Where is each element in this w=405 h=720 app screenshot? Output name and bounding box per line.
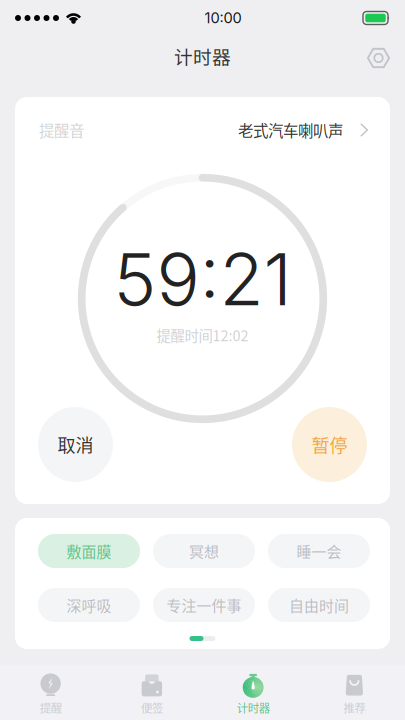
button[interactable]: 冥想 [153,534,255,568]
staticText: 专注一件事 [166,594,241,616]
staticText: 老式汽车喇叭声 [238,119,343,141]
staticText: 便签 [141,699,163,716]
button[interactable]: 提醒 [0,665,101,720]
staticText: 暂停 [311,431,347,458]
button[interactable]: 睡一会 [268,534,370,568]
staticText: 推荐 [343,699,365,716]
button[interactable]: 便签 [101,665,202,720]
staticText: 计时器 [174,42,231,69]
staticText: 提醒 [40,699,62,716]
staticText: 取消 [57,431,93,458]
button[interactable]: 提醒音 [39,115,369,145]
button[interactable]: 推荐 [304,665,405,720]
button[interactable]: 设置 [357,36,405,79]
button[interactable]: 专注一件事 [153,588,255,622]
staticText: 冥想 [189,540,219,562]
staticText: 自由时间 [289,594,349,616]
staticText: 10:00 [204,9,241,27]
button[interactable]: 取消 [38,407,113,482]
staticText: 提醒音 [39,119,84,141]
button[interactable]: 深呼吸 [38,588,140,622]
staticText: 深呼吸 [66,594,111,616]
staticText: 59:21 [113,235,291,322]
button[interactable]: 计时器 [202,665,304,720]
staticText: 睡一会 [296,540,341,562]
button[interactable]: 暂停 [292,407,367,482]
button[interactable]: 自由时间 [268,588,370,622]
button[interactable]: 敷面膜 [38,534,140,568]
staticText: 计时器 [237,699,270,716]
staticText: 提醒时间12:02 [156,325,248,345]
staticText: 敷面膜 [66,540,111,562]
